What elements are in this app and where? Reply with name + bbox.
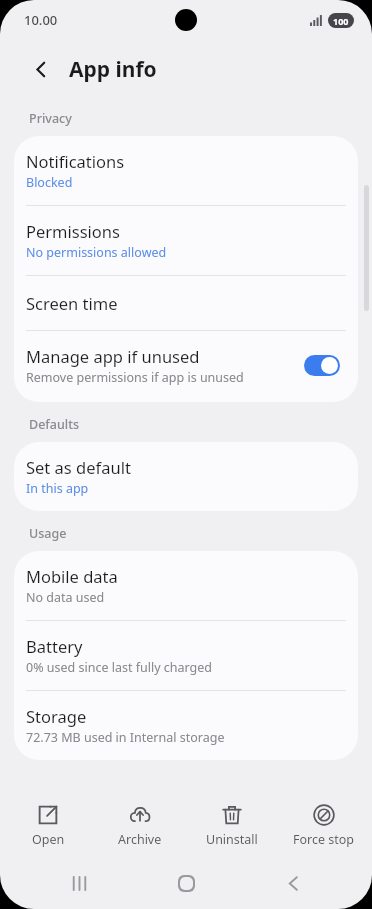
button[interactable]: Screen time: [14, 276, 358, 330]
staticText: Mobile data: [26, 565, 118, 587]
staticText: Screen time: [26, 292, 118, 314]
staticText: Archive: [118, 831, 162, 848]
button[interactable]: Force stop: [280, 800, 368, 852]
staticText: Set as default: [26, 456, 131, 478]
button[interactable]: Notifications: [14, 136, 358, 205]
button[interactable]: Battery: [14, 621, 358, 690]
button[interactable]: Storage: [14, 691, 358, 760]
staticText: Uninstall: [206, 831, 258, 848]
staticText: Storage: [26, 705, 87, 727]
staticText: Battery: [26, 635, 83, 657]
staticText: 72.73 MB used in Internal storage: [26, 729, 225, 746]
staticText: Open: [32, 831, 65, 848]
button[interactable]: Manage app if unused: [14, 331, 358, 402]
staticText: Notifications: [26, 150, 125, 172]
staticText: 10.00: [24, 11, 58, 29]
button[interactable]: Archive: [96, 800, 184, 852]
staticText: No data used: [26, 589, 105, 606]
button[interactable]: Home: [158, 857, 214, 909]
button[interactable]: Set as default: [14, 442, 358, 511]
button[interactable]: Recent apps: [51, 857, 107, 909]
staticText: 0% used since last fully charged: [26, 659, 213, 676]
staticText: In this app: [26, 480, 89, 497]
staticText: Permissions: [26, 220, 120, 242]
button[interactable]: Back: [24, 52, 58, 86]
staticText: Privacy: [29, 110, 72, 127]
button[interactable]: Permissions: [14, 206, 358, 275]
staticText: App info: [69, 55, 157, 84]
staticText: Remove permissions if app is unused: [26, 369, 244, 386]
staticText: No permissions allowed: [26, 244, 167, 261]
staticText: Defaults: [29, 416, 80, 433]
button[interactable]: Open: [4, 800, 92, 852]
staticText: Usage: [29, 525, 67, 542]
button[interactable]: Back: [265, 857, 321, 909]
staticText: Blocked: [26, 174, 73, 191]
staticText: Force stop: [293, 831, 355, 848]
staticText: Manage app if unused: [26, 345, 200, 367]
button[interactable]: Mobile data: [14, 551, 358, 620]
staticText: 100: [333, 15, 349, 27]
button[interactable]: Uninstall: [188, 800, 276, 852]
